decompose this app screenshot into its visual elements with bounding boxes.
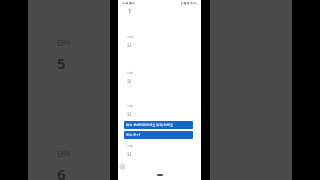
staticText: 라벨	[127, 144, 134, 148]
button[interactable]: 라벨	[127, 35, 134, 47]
button[interactable]: Account	[120, 164, 125, 169]
button[interactable]: 라벨	[127, 144, 134, 156]
staticText: 값	[127, 111, 131, 116]
staticText: 5	[57, 53, 66, 73]
staticText: 값	[127, 151, 131, 156]
button[interactable]: 취소 하기	[124, 131, 193, 139]
staticText: 6	[57, 164, 66, 180]
staticText: 라벨	[127, 71, 134, 75]
staticText: 취소 하기	[126, 133, 140, 137]
staticText: 값	[127, 42, 131, 47]
staticText: 확인 후에이용하세요 입력 하세요	[126, 123, 174, 127]
staticText: 라벨	[127, 35, 134, 39]
staticText: ▮ ■ ● ▼ ▪ ▸	[181, 1, 198, 5]
staticText: 1	[128, 7, 132, 15]
staticText: ▬ ● ■ ▶	[122, 1, 135, 5]
staticText: 라벨	[127, 104, 134, 108]
button[interactable]: 라벨	[127, 71, 134, 83]
staticText: 단어	[57, 39, 70, 47]
staticText: 단어	[57, 150, 70, 158]
button[interactable]: 확인 후에이용하세요 입력 하세요	[124, 121, 193, 129]
button[interactable]: 라벨	[127, 104, 134, 116]
staticText: 값	[127, 78, 131, 83]
